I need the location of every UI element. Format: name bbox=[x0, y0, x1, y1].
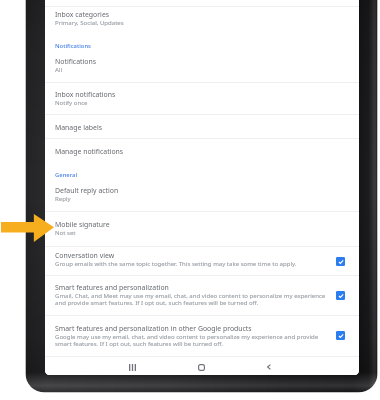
staticText: Reply bbox=[55, 195, 71, 203]
button[interactable]: Default reply action bbox=[45, 181, 359, 211]
staticText: All bbox=[55, 66, 62, 74]
staticText: Group emails with the same topic togethe… bbox=[55, 260, 297, 268]
button[interactable]: Toggle Conversation view bbox=[336, 257, 345, 266]
staticText: Manage labels bbox=[55, 123, 103, 132]
button[interactable]: Manage labels bbox=[45, 115, 359, 138]
button[interactable]: Mobile signature bbox=[45, 212, 359, 246]
staticText: Smart features and personalization bbox=[55, 283, 169, 292]
button[interactable]: Toggle Smart features and personalizatio… bbox=[336, 291, 345, 300]
button[interactable]: Notifications bbox=[45, 33, 359, 52]
button[interactable]: Inbox notifications bbox=[45, 83, 359, 114]
button[interactable]: Notifications bbox=[45, 52, 359, 82]
button[interactable]: Smart features and personalization bbox=[45, 276, 359, 315]
staticText: Primary, Social, Updates bbox=[55, 19, 124, 27]
staticText: Inbox notifications bbox=[55, 90, 116, 99]
staticText: Notifications bbox=[55, 57, 96, 66]
button[interactable]: Toggle Smart features and personalizatio… bbox=[336, 331, 345, 340]
button[interactable]: Smart features and personalization in ot… bbox=[45, 316, 359, 354]
staticText: Google may use my email, chat, and video… bbox=[55, 333, 329, 348]
staticText: Inbox categories bbox=[55, 10, 110, 19]
staticText: Smart features and personalization in ot… bbox=[55, 324, 252, 333]
button[interactable]: Inbox categories bbox=[45, 7, 359, 33]
other: Pointer to Mobile signature bbox=[1, 214, 54, 242]
staticText: Mobile signature bbox=[55, 220, 110, 229]
staticText: General bbox=[55, 171, 78, 179]
staticText: Gmail, Chat, and Meet may use my email, … bbox=[55, 292, 329, 307]
button[interactable]: Recent apps bbox=[123, 358, 141, 375]
button[interactable]: General bbox=[45, 163, 359, 181]
button[interactable]: Back bbox=[260, 358, 278, 375]
staticText: Manage notifications bbox=[55, 147, 124, 156]
button[interactable]: Home bbox=[192, 358, 210, 375]
staticText: Notifications bbox=[55, 42, 91, 50]
staticText: Notify once bbox=[55, 99, 88, 107]
staticText: Not set bbox=[55, 229, 76, 237]
staticText: Default reply action bbox=[55, 186, 119, 195]
button[interactable]: Conversation view bbox=[45, 247, 359, 275]
button[interactable]: Manage notifications bbox=[45, 139, 359, 163]
staticText: Conversation view bbox=[55, 251, 115, 260]
